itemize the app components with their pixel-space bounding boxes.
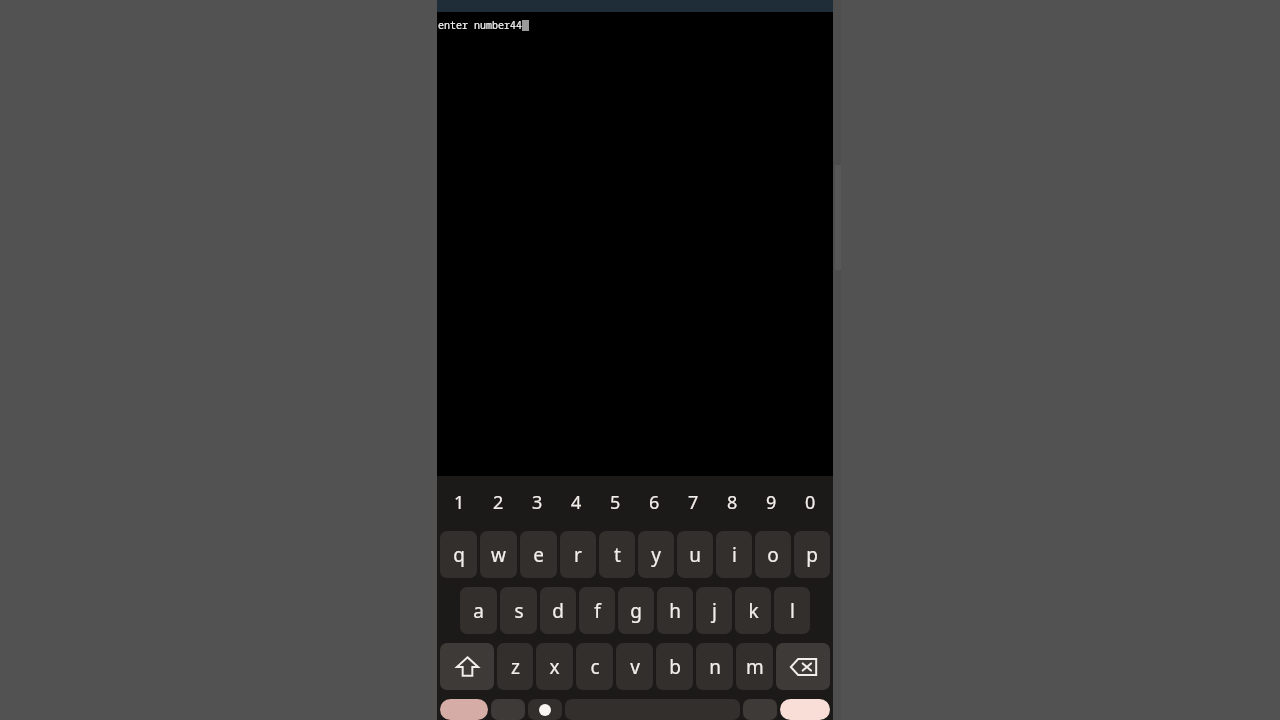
staticText: d — [552, 598, 564, 624]
staticText: 2 — [493, 490, 504, 515]
staticText: 9 — [766, 490, 777, 515]
staticText: q — [453, 542, 465, 568]
staticText: m — [746, 654, 764, 680]
button[interactable]: a — [460, 587, 497, 634]
staticText: 0 — [805, 490, 816, 515]
button[interactable]: n — [696, 643, 733, 690]
button[interactable]: Backspace — [776, 643, 830, 690]
button[interactable]: Symbols — [491, 699, 525, 720]
button[interactable]: l — [774, 587, 810, 634]
staticText: r — [574, 542, 582, 568]
button[interactable]: Shift — [440, 643, 494, 690]
button[interactable]: Emoji — [440, 699, 488, 720]
button[interactable]: u — [677, 531, 713, 578]
staticText: k — [748, 598, 759, 624]
staticText: l — [790, 598, 795, 624]
button[interactable]: 3 — [518, 484, 557, 520]
button[interactable]: b — [656, 643, 693, 690]
button[interactable]: 8 — [713, 484, 752, 520]
staticText: h — [669, 598, 681, 624]
staticText: s — [514, 598, 524, 624]
staticText: c — [590, 654, 600, 680]
staticText: x — [549, 654, 560, 680]
button[interactable]: 9 — [752, 484, 791, 520]
button[interactable]: 4 — [557, 484, 596, 520]
button[interactable]: Period — [743, 699, 777, 720]
staticText: p — [806, 542, 818, 568]
button[interactable]: w — [480, 531, 517, 578]
button[interactable]: i — [716, 531, 752, 578]
staticText: u — [689, 542, 701, 568]
button[interactable]: j — [696, 587, 732, 634]
button[interactable]: 0 — [791, 484, 830, 520]
button[interactable]: q — [440, 531, 477, 578]
staticText: i — [732, 542, 737, 568]
staticText: j — [712, 598, 717, 624]
button[interactable]: 1 — [440, 484, 479, 520]
button[interactable]: z — [497, 643, 533, 690]
staticText: n — [709, 654, 721, 680]
button[interactable]: 2 — [479, 484, 518, 520]
staticText: f — [594, 598, 601, 624]
button[interactable]: 6 — [635, 484, 674, 520]
staticText: 5 — [610, 490, 621, 515]
staticText: e — [533, 542, 544, 568]
button[interactable]: x — [536, 643, 573, 690]
staticText: w — [491, 542, 506, 568]
button[interactable]: s — [500, 587, 537, 634]
staticText: 1 — [454, 490, 465, 515]
staticText: v — [630, 654, 640, 680]
button[interactable]: r — [560, 531, 596, 578]
button[interactable]: f — [579, 587, 615, 634]
button[interactable]: p — [794, 531, 830, 578]
button[interactable]: Comma — [528, 699, 562, 720]
staticText: a — [473, 598, 484, 624]
staticText: 8 — [727, 490, 738, 515]
button[interactable]: t — [599, 531, 635, 578]
button[interactable]: k — [735, 587, 771, 634]
staticText: t — [614, 542, 621, 568]
button[interactable]: d — [540, 587, 576, 634]
button[interactable]: y — [638, 531, 674, 578]
button[interactable]: h — [657, 587, 693, 634]
button[interactable]: e — [520, 531, 557, 578]
staticText: g — [630, 598, 642, 624]
staticText: 3 — [532, 490, 543, 515]
staticText: enter number44 — [438, 18, 522, 32]
staticText: o — [767, 542, 779, 568]
button[interactable]: 5 — [596, 484, 635, 520]
staticText: z — [511, 654, 520, 680]
button[interactable]: Enter — [780, 699, 830, 720]
button[interactable]: g — [618, 587, 654, 634]
button[interactable]: 7 — [674, 484, 713, 520]
button[interactable]: c — [576, 643, 613, 690]
button[interactable]: o — [755, 531, 791, 578]
button[interactable]: m — [736, 643, 773, 690]
staticText: 4 — [571, 490, 582, 515]
staticText: b — [669, 654, 681, 680]
button[interactable]: v — [616, 643, 653, 690]
staticText: 7 — [688, 490, 699, 515]
staticText: y — [651, 542, 661, 568]
staticText: 6 — [649, 490, 660, 515]
